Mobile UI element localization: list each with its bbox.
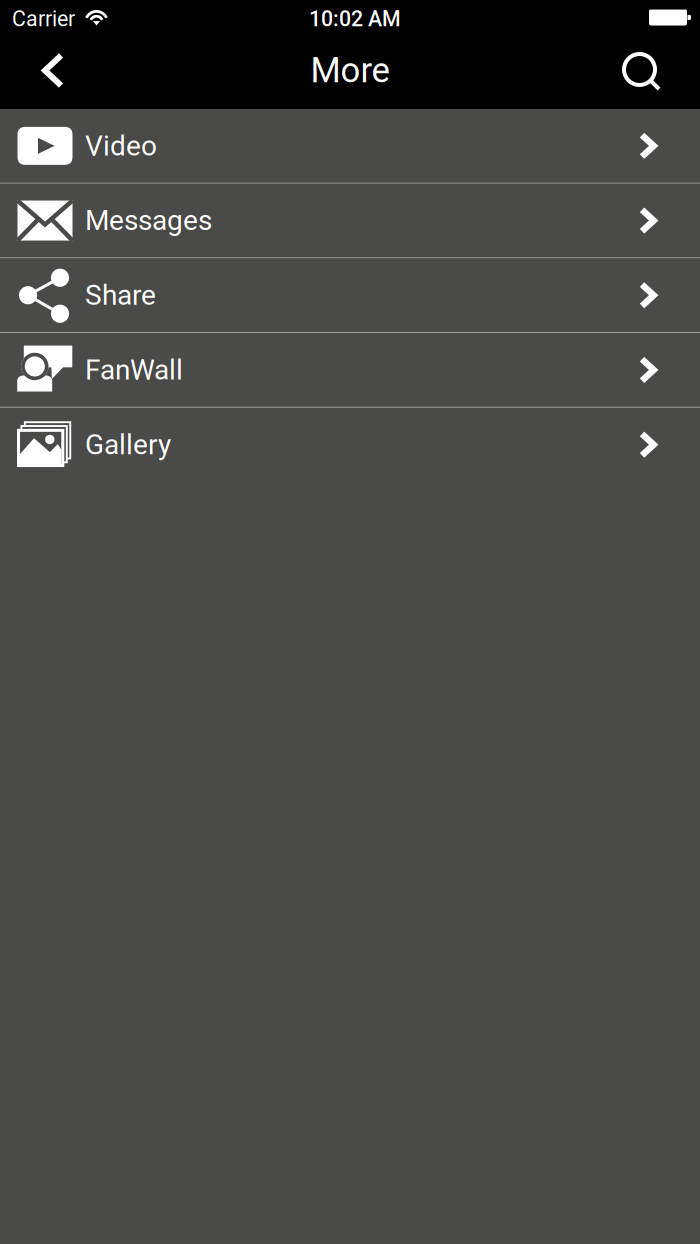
button[interactable]: FanWall [0, 333, 700, 408]
button[interactable]: Messages [0, 184, 700, 258]
staticText: FanWall [85, 353, 183, 386]
button[interactable]: Gallery [0, 408, 700, 482]
staticText: Carrier [12, 6, 75, 31]
staticText: Share [85, 279, 156, 312]
button[interactable]: Video [0, 109, 700, 184]
staticText: More [310, 50, 389, 91]
staticText: Messages [85, 204, 212, 237]
staticText: Gallery [85, 428, 171, 461]
button[interactable]: Share [0, 258, 700, 333]
staticText: Video [85, 129, 157, 162]
staticText: 10:02 AM [309, 6, 401, 31]
button[interactable]: Back [0, 38, 102, 109]
button[interactable]: Search [582, 38, 700, 109]
